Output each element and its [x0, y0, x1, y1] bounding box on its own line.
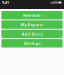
button[interactable]: My Reports	[1, 20, 63, 29]
staticText: New Scan	[23, 13, 41, 18]
button[interactable]: New Scan	[1, 11, 63, 19]
button[interactable]: Add Entry	[1, 30, 63, 38]
staticText: Add Entry	[21, 31, 42, 37]
button[interactable]: Settings	[1, 39, 63, 47]
staticText: My Reports	[20, 22, 43, 27]
staticText: Settings	[23, 41, 40, 46]
staticText: 9:41	[2, 0, 9, 5]
